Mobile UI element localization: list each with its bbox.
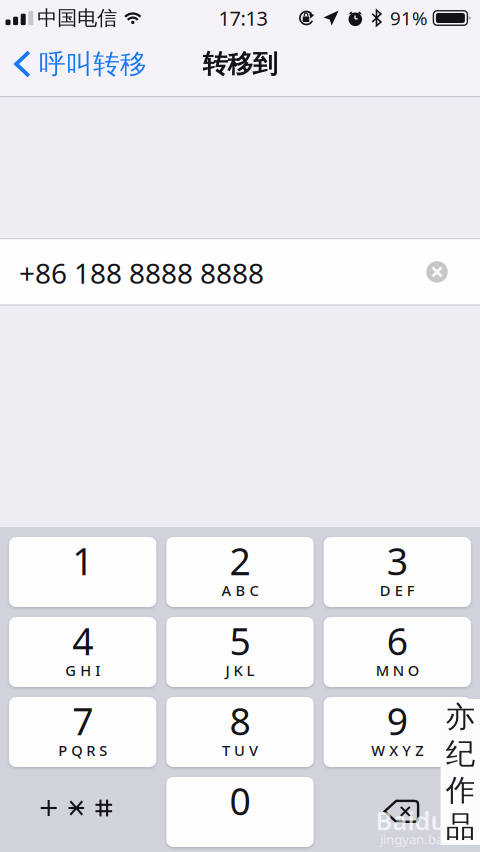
staticText: 转移到 <box>202 48 277 79</box>
button[interactable]: 1 <box>9 537 156 607</box>
staticText: 呼叫转移 <box>39 48 147 80</box>
button[interactable]: 3 <box>324 537 471 607</box>
button[interactable]: Plus, star, pound <box>9 777 156 847</box>
button[interactable]: 8 <box>166 697 314 767</box>
staticText: D E F <box>380 581 415 600</box>
staticText: 7 <box>72 696 93 745</box>
staticText: 3 <box>387 536 408 585</box>
button[interactable]: 7 <box>9 697 156 767</box>
staticText: 91% <box>390 6 428 30</box>
staticText: 8 <box>229 696 250 745</box>
staticText: A B C <box>221 581 258 600</box>
staticText: 2 <box>229 536 250 585</box>
staticText: G H I <box>65 661 100 680</box>
staticText: 17:13 <box>218 5 267 31</box>
staticText: 中国电信 <box>37 6 117 30</box>
button[interactable]: 呼叫转移 <box>0 36 157 96</box>
staticText: P Q R S <box>58 741 107 760</box>
button[interactable]: 4 <box>9 617 156 687</box>
staticText: 5 <box>229 616 250 665</box>
staticText: 亦 <box>446 699 475 735</box>
staticText: Baidu经验 <box>375 804 480 837</box>
staticText: jingyan.baidu.com <box>380 830 480 848</box>
staticText: 纪 <box>446 736 475 772</box>
button[interactable]: 2 <box>166 537 314 607</box>
staticText: 1 <box>72 536 93 585</box>
staticText: 6 <box>387 616 408 665</box>
staticText: 0 <box>229 776 250 825</box>
staticText: 品 <box>446 809 475 845</box>
button[interactable]: 5 <box>166 617 314 687</box>
staticText: W X Y Z <box>371 741 423 760</box>
staticText: 9 <box>387 696 408 745</box>
staticText: 4 <box>72 616 93 665</box>
button[interactable]: 9 <box>324 697 471 767</box>
button[interactable]: 6 <box>324 617 471 687</box>
staticText: J K L <box>225 661 254 680</box>
button[interactable]: Delete <box>324 777 471 847</box>
staticText: M N O <box>376 661 419 680</box>
button[interactable]: Clear text <box>420 255 480 289</box>
staticText: 作 <box>446 772 475 808</box>
button[interactable]: 0 <box>166 777 314 847</box>
staticText: +86 188 8888 8888 <box>19 254 264 291</box>
staticText: T U V <box>222 741 258 760</box>
